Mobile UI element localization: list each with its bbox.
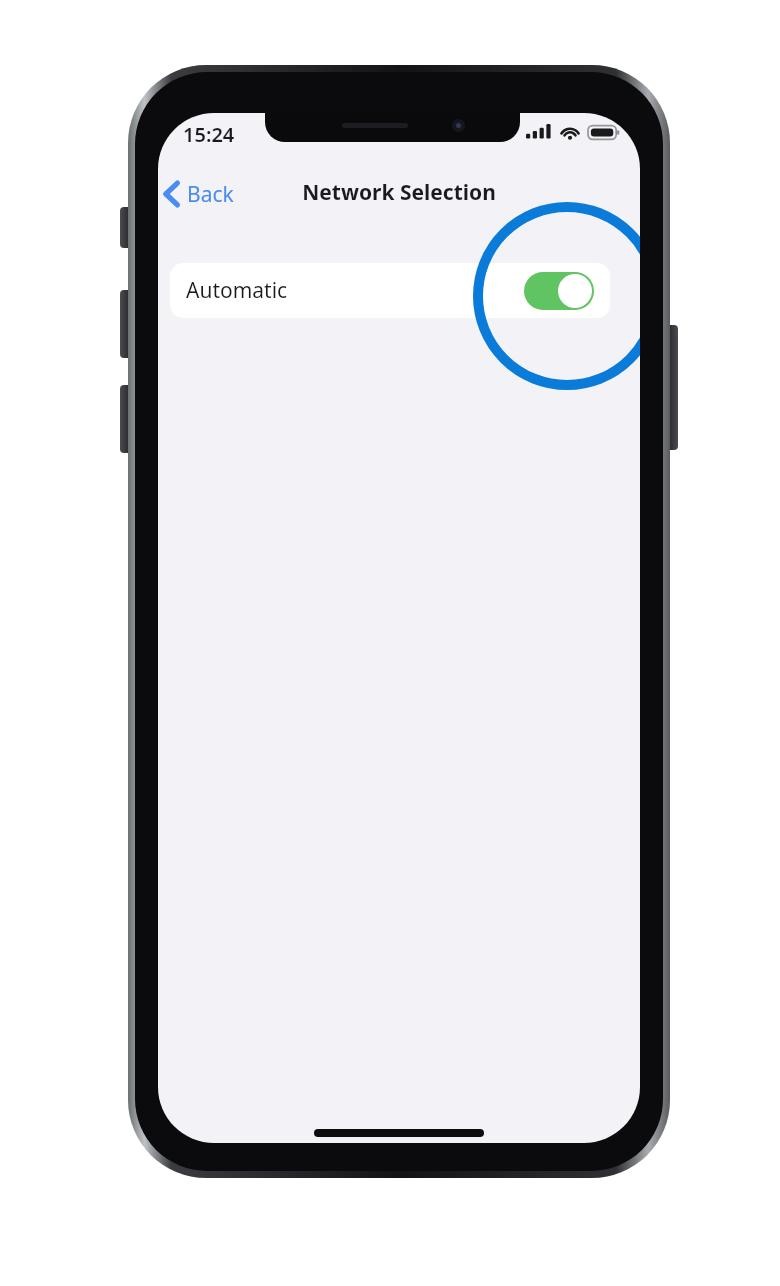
- button[interactable]: Automatic network selection on: [524, 272, 594, 310]
- staticText: 15:24: [183, 121, 235, 148]
- button[interactable]: Back: [163, 172, 234, 216]
- staticText: Network Selection: [158, 178, 640, 207]
- button[interactable]: Automatic: [170, 263, 610, 318]
- staticText: Automatic: [186, 276, 288, 305]
- staticText: Back: [187, 180, 234, 209]
